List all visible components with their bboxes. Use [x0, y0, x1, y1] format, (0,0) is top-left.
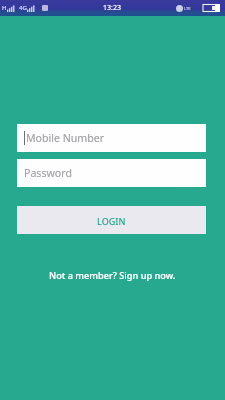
- button[interactable]: Mobile Number: [17, 124, 206, 152]
- staticText: LOGIN: [97, 215, 126, 227]
- button[interactable]: Not a member? Sign up now.: [45, 267, 180, 284]
- button[interactable]: Password: [17, 159, 206, 187]
- staticText: Password: [24, 166, 72, 180]
- staticText: 13:23: [103, 3, 121, 13]
- staticText: H: [2, 4, 7, 12]
- button[interactable]: LOGIN: [17, 206, 206, 234]
- staticText: Mobile Number: [26, 131, 105, 145]
- staticText: LTE: [184, 6, 191, 11]
- staticText: 4G: [19, 4, 27, 12]
